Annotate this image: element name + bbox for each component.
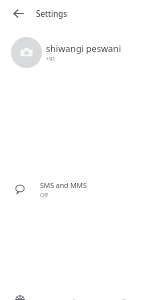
- button[interactable]: shiwangi peswani: [0, 33, 149, 71]
- button[interactable]: Back: [8, 3, 28, 23]
- staticText: Off: [40, 191, 48, 198]
- button[interactable]: SMS and MMS: [0, 78, 149, 300]
- staticText: +91: [46, 55, 56, 62]
- staticText: SMS and MMS: [40, 181, 87, 191]
- staticText: shiwangi peswani: [46, 42, 122, 54]
- staticText: Settings: [36, 8, 68, 19]
